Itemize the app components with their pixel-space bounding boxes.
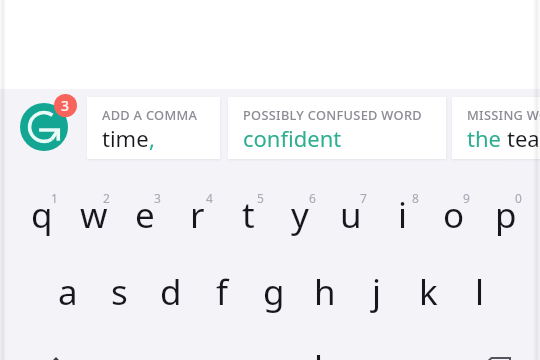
staticText: 3: [61, 96, 70, 115]
staticText: p: [495, 191, 517, 239]
button[interactable]: d: [145, 266, 197, 318]
button[interactable]: k: [402, 266, 454, 318]
staticText: confident: [243, 123, 342, 153]
button[interactable]: h: [299, 266, 351, 318]
button[interactable]: g: [248, 266, 300, 318]
button[interactable]: r: [171, 189, 223, 241]
staticText: 7: [360, 190, 367, 206]
button[interactable]: Grammarly: [20, 103, 68, 151]
staticText: 9: [463, 190, 470, 206]
staticText: f: [216, 268, 229, 316]
button[interactable]: a: [42, 266, 94, 318]
button[interactable]: e: [119, 189, 171, 241]
staticText: 4: [206, 190, 213, 206]
button[interactable]: f: [196, 266, 248, 318]
button[interactable]: o: [428, 189, 480, 241]
staticText: 6: [309, 190, 316, 206]
button[interactable]: ADD A COMMA: [87, 97, 220, 159]
button[interactable]: t: [222, 189, 274, 241]
staticText: 1: [51, 190, 58, 206]
staticText: s: [111, 268, 128, 316]
staticText: 3: [154, 190, 161, 206]
staticText: y: [291, 191, 309, 239]
staticText: POSSIBLY CONFUSED WORD: [243, 106, 422, 123]
staticText: l: [475, 268, 485, 316]
button[interactable]: i: [377, 189, 429, 241]
staticText: team: [507, 123, 540, 153]
staticText: ADD A COMMA: [102, 106, 198, 123]
staticText: 5: [257, 190, 264, 206]
staticText: d: [160, 268, 182, 316]
button[interactable]: y: [274, 189, 326, 241]
staticText: o: [443, 191, 465, 239]
button[interactable]: u: [325, 189, 377, 241]
staticText: t: [242, 191, 255, 239]
staticText: a: [58, 268, 78, 316]
staticText: j: [372, 268, 382, 316]
staticText: the: [467, 123, 507, 153]
button[interactable]: POSSIBLY CONFUSED WORD: [228, 97, 446, 159]
staticText: i: [398, 191, 408, 239]
button[interactable]: w: [68, 189, 120, 241]
staticText: h: [314, 268, 336, 316]
staticText: w: [80, 191, 108, 239]
staticText: time: [102, 123, 149, 153]
staticText: e: [135, 191, 155, 239]
staticText: 0: [515, 190, 522, 206]
staticText: g: [263, 268, 285, 316]
button[interactable]: j: [351, 266, 403, 318]
button[interactable]: q: [16, 189, 68, 241]
staticText: r: [190, 191, 205, 239]
button[interactable]: b: [299, 342, 351, 360]
staticText: MISSING WORD: [467, 106, 540, 123]
staticText: u: [340, 191, 362, 239]
button[interactable]: s: [93, 266, 145, 318]
button[interactable]: p: [480, 189, 532, 241]
button[interactable]: 3 alerts: [54, 94, 77, 117]
button[interactable]: Backspace: [465, 342, 525, 360]
staticText: b: [314, 344, 336, 360]
staticText: 8: [412, 190, 419, 206]
button[interactable]: Shift: [26, 342, 86, 360]
staticText: ,: [149, 123, 155, 153]
button[interactable]: MISSING WORD: [452, 97, 540, 159]
staticText: k: [419, 268, 438, 316]
button[interactable]: l: [454, 266, 506, 318]
staticText: 2: [103, 190, 110, 206]
staticText: q: [31, 191, 53, 239]
